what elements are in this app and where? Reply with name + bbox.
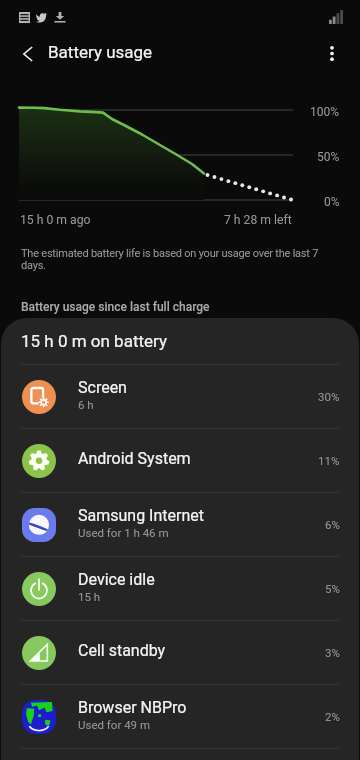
staticText: 6 h <box>78 398 94 411</box>
staticText: 11% <box>318 454 340 467</box>
button[interactable]: Back <box>8 34 48 74</box>
staticText: 30% <box>318 390 340 403</box>
staticText: 6% <box>325 518 340 531</box>
staticText: Battery usage since last full charge <box>21 300 210 314</box>
staticText: 50% <box>317 150 340 164</box>
staticText: 15 h 0 m ago <box>20 213 91 227</box>
button[interactable]: Screen <box>1 365 359 428</box>
staticText: Battery usage <box>48 42 153 62</box>
staticText: 3% <box>325 646 340 659</box>
staticText: Used for 1 h 46 m <box>78 526 169 539</box>
staticText: Used for 49 m <box>78 718 150 731</box>
button[interactable]: Device idle <box>1 557 359 620</box>
staticText: Device idle <box>78 570 155 589</box>
staticText: Cell standby <box>78 641 166 660</box>
button[interactable]: Cell standby <box>1 621 359 684</box>
staticText: 100% <box>310 105 340 119</box>
button[interactable]: Browser NBPro <box>1 685 359 748</box>
staticText: 7 h 28 m left <box>224 213 292 227</box>
staticText: 15 h 0 m on battery <box>21 331 167 351</box>
staticText: Screen <box>78 378 127 397</box>
button[interactable]: Samsung Internet <box>1 493 359 556</box>
staticText: Android System <box>78 449 191 468</box>
staticText: 5% <box>325 582 340 595</box>
staticText: The estimated battery life is based on y… <box>21 247 342 272</box>
button[interactable]: More options <box>312 33 352 73</box>
staticText: 2% <box>325 710 340 723</box>
staticText: Samsung Internet <box>78 506 204 525</box>
staticText: Browser NBPro <box>78 698 187 717</box>
button[interactable]: Android System <box>1 429 359 492</box>
staticText: 15 h <box>78 590 101 603</box>
staticText: 0% <box>324 195 340 209</box>
